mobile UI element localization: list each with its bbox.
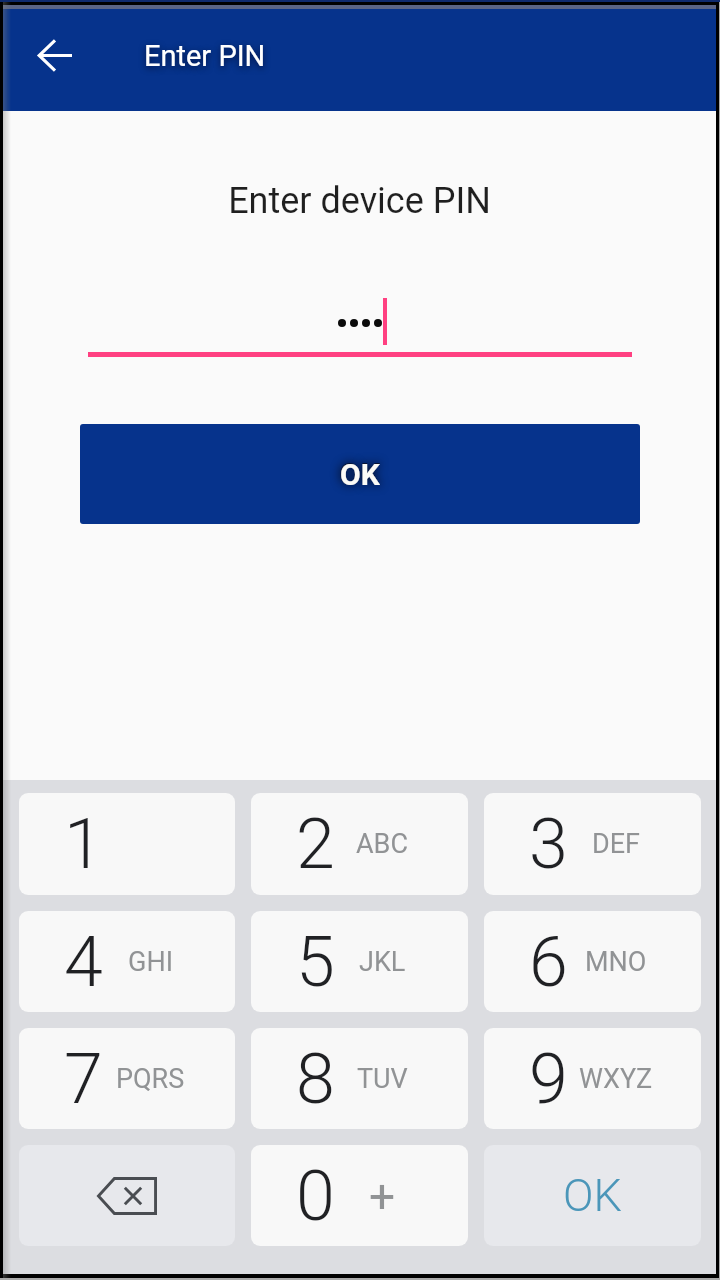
staticText: Enter device PIN	[3, 180, 716, 222]
button[interactable]: 1	[19, 793, 235, 895]
staticText: TUV	[357, 1063, 408, 1095]
staticText: GHI	[128, 946, 173, 978]
button[interactable]: 2	[251, 793, 468, 895]
staticText: MNO	[585, 946, 647, 978]
staticText: 7	[64, 1038, 103, 1120]
button[interactable]: 8	[251, 1028, 468, 1129]
staticText: +	[369, 1169, 396, 1223]
button[interactable]: OK	[484, 1145, 701, 1246]
staticText: 8	[296, 1038, 335, 1120]
staticText: WXYZ	[579, 1063, 653, 1095]
staticText: 4	[64, 921, 103, 1003]
button[interactable]: 4	[19, 911, 235, 1012]
staticText: OK	[563, 1169, 622, 1222]
staticText: 6	[529, 921, 568, 1003]
staticText: ABC	[356, 828, 409, 860]
button[interactable]: Navigate up	[19, 19, 91, 91]
button[interactable]: 6	[484, 911, 701, 1012]
staticText: PQRS	[116, 1063, 185, 1095]
button[interactable]: Delete	[19, 1145, 235, 1246]
staticText: 1	[64, 803, 103, 885]
button[interactable]: 3	[484, 793, 701, 895]
button[interactable]: OK	[80, 424, 640, 524]
staticText: 9	[529, 1038, 568, 1120]
button[interactable]: 9	[484, 1028, 701, 1129]
staticText: Enter PIN	[144, 39, 266, 73]
staticText: OK	[340, 457, 380, 492]
button[interactable]: 0	[251, 1145, 468, 1246]
staticText: JKL	[359, 946, 406, 978]
staticText: 2	[296, 803, 335, 885]
staticText: 0	[296, 1155, 335, 1237]
staticText: OK	[339, 456, 381, 492]
staticText: 5	[296, 921, 335, 1003]
button[interactable]: 7	[19, 1028, 235, 1129]
staticText: 3	[529, 803, 568, 885]
button[interactable]: 5	[251, 911, 468, 1012]
staticText: DEF	[592, 828, 640, 860]
